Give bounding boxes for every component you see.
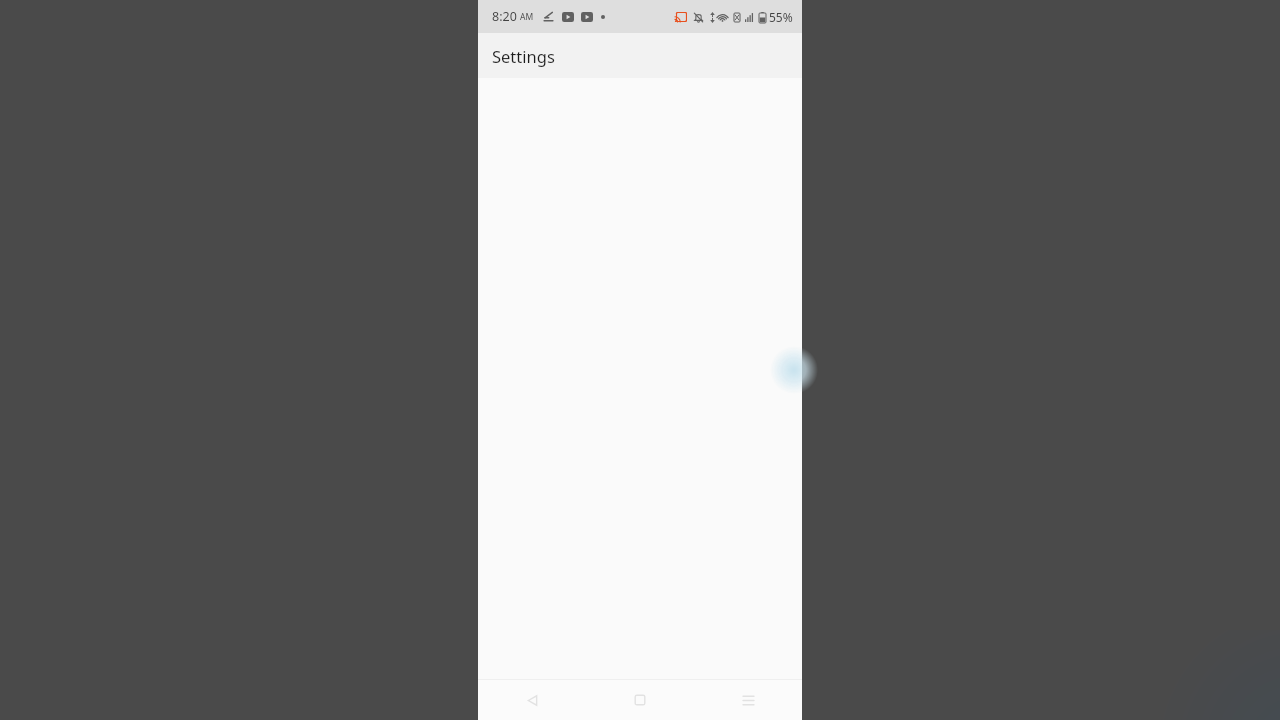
staticText: Settings bbox=[492, 45, 555, 67]
staticText: 8:20 bbox=[492, 8, 517, 25]
staticText: 55% bbox=[769, 9, 793, 25]
staticText: AM bbox=[520, 11, 534, 23]
